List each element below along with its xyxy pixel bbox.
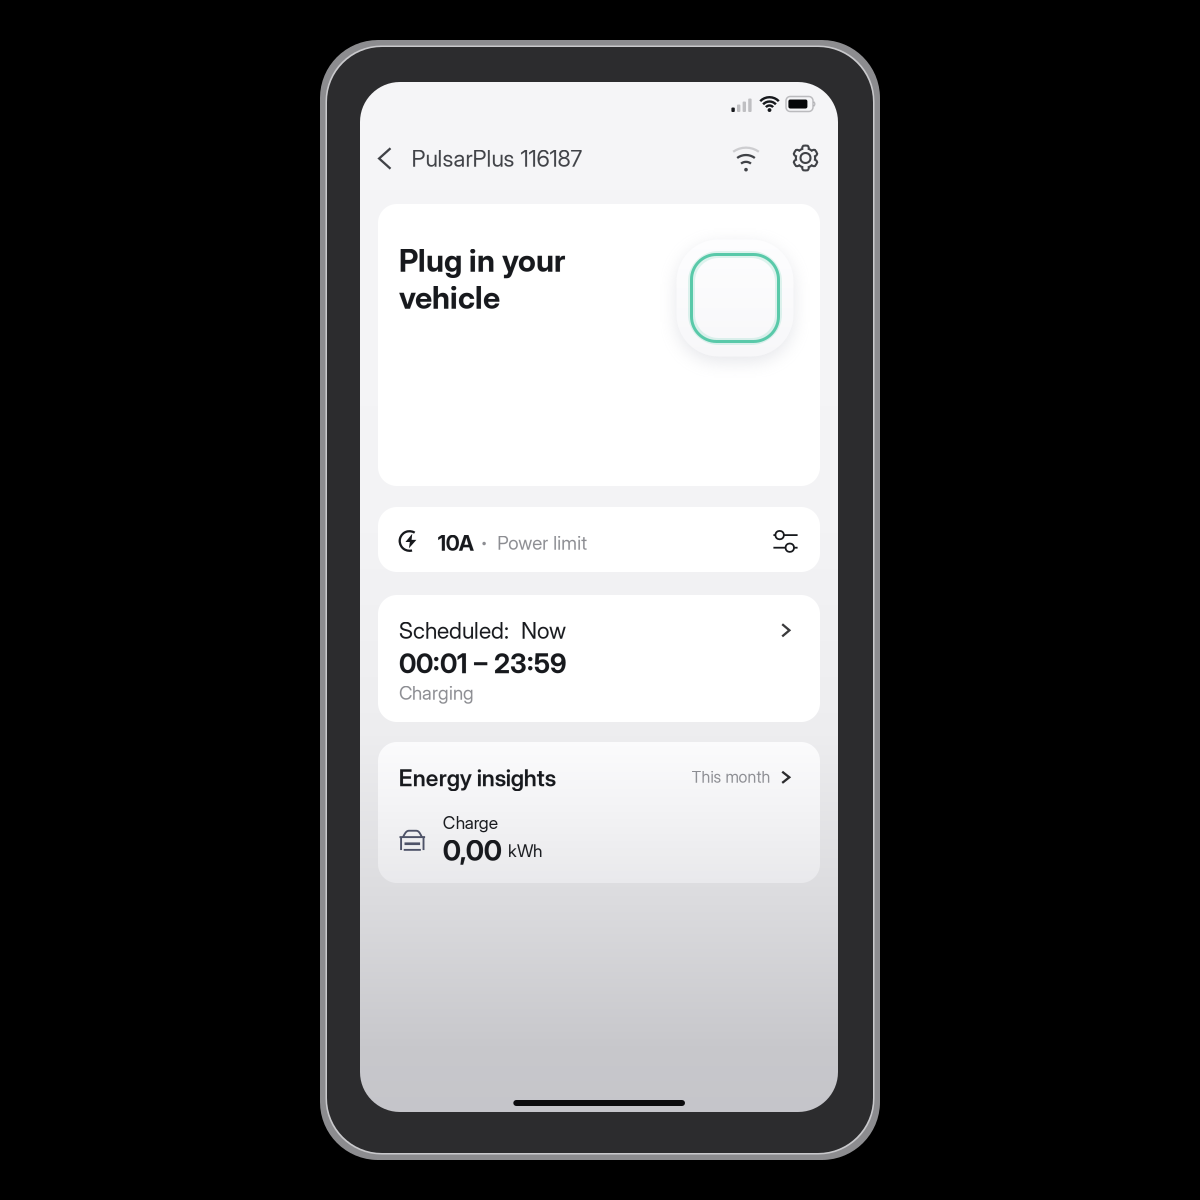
staticText: Plug in your [399,242,565,279]
button[interactable]: Wi-Fi [725,138,767,180]
button[interactable]: 10A [378,507,820,572]
staticText: Charging [399,682,474,704]
staticText: Power limit [497,532,587,554]
staticText: This month [691,767,770,787]
staticText: 00:01 – 23:59 [399,647,566,680]
staticText: 0,00 [443,834,502,867]
staticText: Charge [443,812,498,833]
staticText: Scheduled: Now [399,617,566,644]
staticText: PulsarPlus 116187 [412,145,583,172]
staticText: kWh [508,840,542,861]
staticText: 10A [438,530,474,556]
staticText: Energy insights [399,764,556,792]
button[interactable]: Settings [784,137,826,179]
button[interactable]: Energy insights [378,742,820,883]
button[interactable]: Scheduled: Now [378,595,820,722]
staticText: vehicle [399,279,500,316]
staticText: · [481,530,486,556]
button[interactable]: PulsarPlus 116187 [360,135,620,181]
